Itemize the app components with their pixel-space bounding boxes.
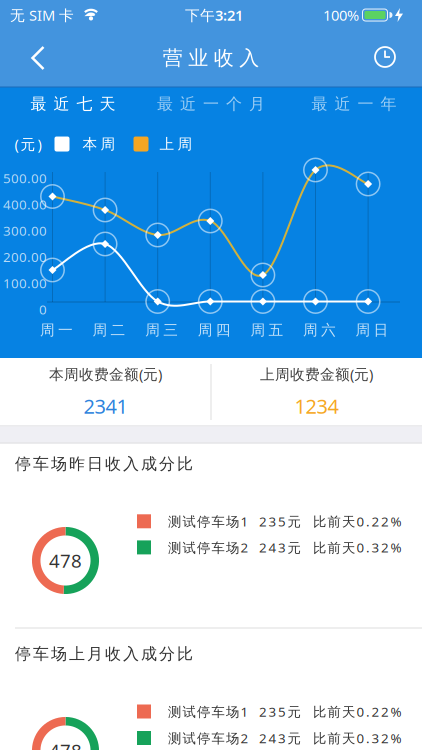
staticText: 测试停车场1 235元 比前天0.22% bbox=[168, 512, 401, 530]
staticText: 周二 bbox=[93, 321, 126, 339]
staticText: 2341 bbox=[83, 393, 127, 419]
staticText: 周三 bbox=[145, 321, 178, 339]
staticText: 下午3:21 bbox=[185, 5, 243, 25]
staticText: 周五 bbox=[250, 321, 283, 339]
staticText: 周日 bbox=[356, 321, 389, 339]
staticText: 100.00 bbox=[3, 274, 47, 292]
staticText: 周一 bbox=[40, 321, 73, 339]
staticText: 周六 bbox=[303, 321, 336, 339]
staticText: 停车场上月收入成分比 bbox=[15, 644, 193, 664]
staticText: 500.00 bbox=[3, 169, 47, 187]
staticText: 上周收费金额(元) bbox=[260, 364, 373, 384]
staticText: 无 SIM 卡 bbox=[10, 5, 74, 25]
staticText: 上周 bbox=[159, 135, 192, 153]
staticText: 测试停车场2 243元 比前天0.32% bbox=[168, 538, 401, 556]
staticText: 300.00 bbox=[3, 222, 47, 239]
staticText: 400.00 bbox=[3, 195, 47, 213]
staticText: 最近一年 bbox=[311, 94, 396, 114]
staticText: 停车场昨日收入成分比 bbox=[15, 454, 193, 474]
staticText: 最近七天 bbox=[30, 94, 115, 114]
staticText: 测试停车场2 243元 比前天0.32% bbox=[168, 729, 401, 747]
staticText: 测试停车场1 235元 比前天0.22% bbox=[168, 703, 401, 720]
button[interactable]: 最近一年 bbox=[284, 88, 422, 120]
staticText: 营业收入 bbox=[163, 46, 259, 70]
staticText: (元) bbox=[14, 134, 41, 154]
staticText: 0 bbox=[39, 300, 47, 318]
staticText: 本周收费金额(元) bbox=[49, 364, 162, 384]
button[interactable] bbox=[365, 37, 405, 77]
staticText: 本周 bbox=[82, 135, 115, 153]
button[interactable]: 最近一个月 bbox=[141, 88, 281, 120]
button[interactable]: 最近七天 bbox=[3, 88, 143, 120]
staticText: 478 bbox=[49, 738, 82, 750]
staticText: 周四 bbox=[198, 321, 231, 339]
staticText: 最近一个月 bbox=[157, 94, 265, 114]
staticText: 100% bbox=[323, 5, 359, 25]
staticText: 200.00 bbox=[3, 248, 47, 266]
staticText: 478 bbox=[49, 548, 82, 573]
button[interactable] bbox=[16, 36, 60, 80]
staticText: 1234 bbox=[294, 393, 338, 419]
